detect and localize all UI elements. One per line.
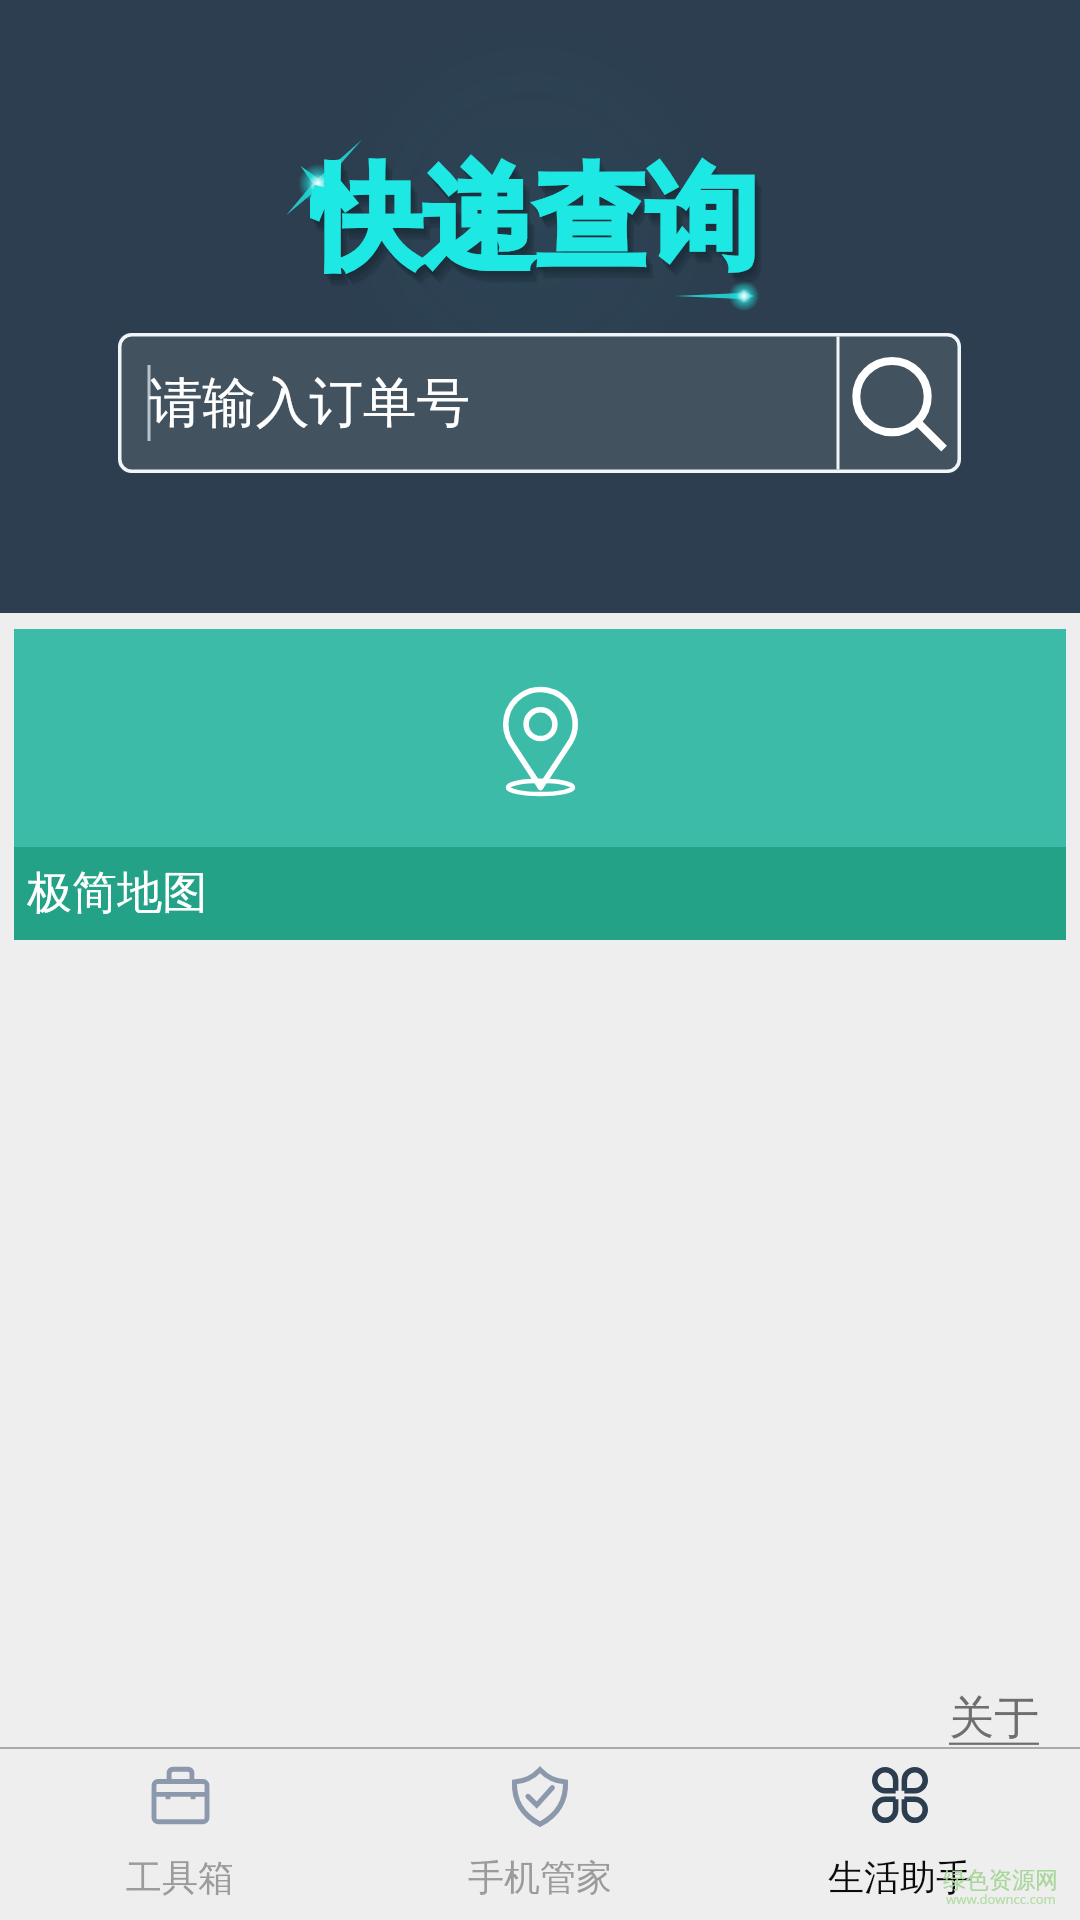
button[interactable]: 关于 <box>949 1690 1039 1747</box>
staticText: 快递查询 <box>310 149 758 277</box>
button[interactable]: 手机管家 <box>360 1749 720 1900</box>
other: 手机管家 <box>510 1767 570 1823</box>
staticText: 快递查询 <box>313 154 761 282</box>
staticText: 请输入订单号 <box>149 369 470 436</box>
other: 生活助手 <box>872 1767 928 1823</box>
staticText: 快递查询 <box>317 161 765 289</box>
staticText: www.downcc.com <box>946 1890 1056 1908</box>
staticText: 手机管家 <box>468 1855 612 1900</box>
staticText: 工具箱 <box>126 1855 234 1900</box>
other: 工具箱 <box>152 1767 209 1823</box>
button[interactable]: 工具箱 <box>0 1749 360 1900</box>
staticText: 快递查询 <box>311 151 759 279</box>
staticText: 快递查询 <box>314 156 762 284</box>
staticText: 极简地图 <box>27 865 207 922</box>
staticText: 关于 <box>949 1690 1039 1747</box>
button[interactable]: 极简地图 <box>14 629 1066 940</box>
button[interactable]: 请输入订单号 <box>118 333 838 473</box>
button[interactable]: 搜索 <box>838 333 961 473</box>
button[interactable]: 生活助手 <box>720 1749 1080 1900</box>
staticText: 快递查询 <box>316 159 764 287</box>
staticText: 生活助手 <box>828 1855 972 1900</box>
staticText: 绿色资源网 <box>943 1866 1058 1895</box>
